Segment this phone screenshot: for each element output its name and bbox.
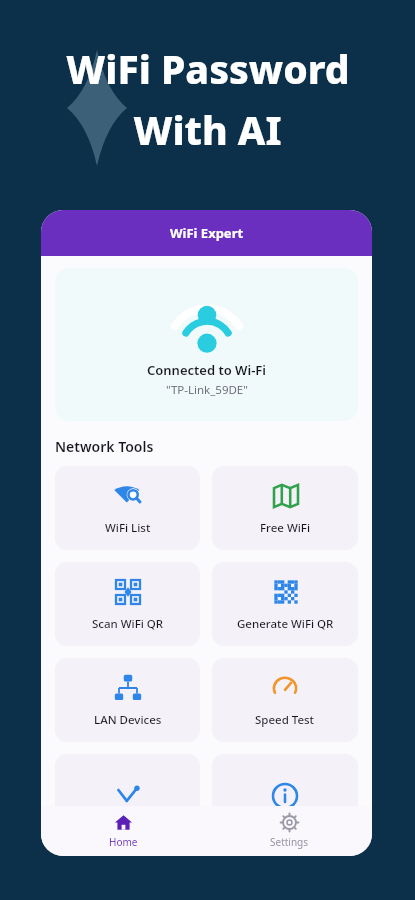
- staticText: Settings: [270, 835, 309, 849]
- button[interactable]: Settings: [206, 806, 372, 856]
- button[interactable]: Home: [41, 806, 206, 856]
- staticText: Network Tools: [55, 437, 154, 456]
- staticText: Speed Test: [255, 712, 315, 728]
- staticText: WiFi Password: [66, 42, 350, 95]
- button[interactable]: Free WiFi: [212, 466, 358, 550]
- staticText: Free WiFi: [260, 520, 311, 536]
- staticText: WiFi Expert: [170, 224, 244, 242]
- button[interactable]: [55, 754, 200, 838]
- staticText: LAN Devices: [94, 712, 162, 728]
- staticText: With AI: [133, 103, 282, 156]
- button[interactable]: Scan WiFi QR: [55, 562, 200, 646]
- staticText: "TP-Link_59DE": [166, 382, 248, 398]
- staticText: WiFi List: [105, 520, 151, 536]
- button[interactable]: Connected to Wi-Fi: [55, 268, 358, 421]
- staticText: Scan WiFi QR: [92, 616, 164, 632]
- staticText: Generate WiFi QR: [237, 616, 334, 632]
- staticText: Home: [109, 835, 138, 849]
- staticText: Connected to Wi-Fi: [147, 361, 267, 379]
- button[interactable]: WiFi List: [55, 466, 200, 550]
- button[interactable]: LAN Devices: [55, 658, 200, 742]
- button[interactable]: Generate WiFi QR: [212, 562, 358, 646]
- button[interactable]: Speed Test: [212, 658, 358, 742]
- button[interactable]: [212, 754, 358, 838]
